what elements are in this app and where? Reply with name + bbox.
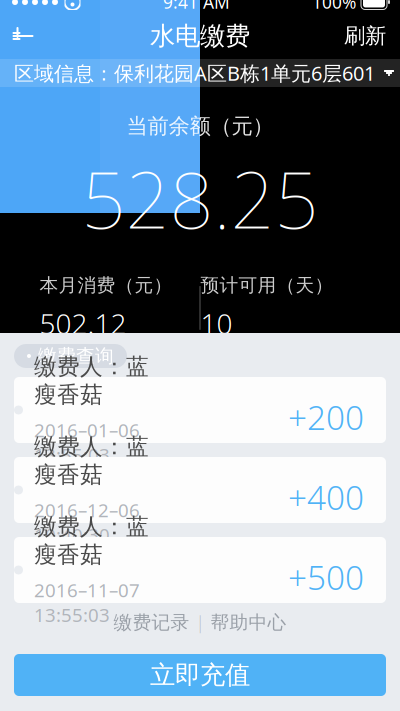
staticText: 100% — [312, 0, 356, 13]
staticText: 2016–11–07 13:55:03 — [34, 578, 145, 627]
staticText: +500 — [288, 555, 364, 599]
staticText: 刷新 — [344, 23, 386, 49]
button[interactable]: 区域信息：保利花园A区B栋1单元6层601 — [0, 59, 400, 87]
staticText: 9:41 AM — [163, 0, 230, 13]
staticText: 缴费人：蓝瘦香菇 — [34, 353, 149, 409]
button[interactable]: 刷新 — [330, 14, 400, 58]
button[interactable]: 返回 — [0, 14, 46, 58]
button[interactable]: 帮助中心 — [206, 607, 290, 638]
staticText: 528.25 — [81, 147, 318, 250]
staticText: 502.12 — [39, 305, 126, 342]
staticText: 2016–12–06 10:40:30 — [34, 498, 145, 547]
staticText: 帮助中心 — [210, 611, 286, 634]
staticText: 区域信息：保利花园A区B栋1单元6层601 — [14, 60, 375, 86]
staticText: 缴费人：蓝瘦香菇 — [34, 433, 149, 489]
button[interactable]: 缴费记录 — [109, 607, 193, 638]
staticText: +400 — [288, 475, 364, 519]
staticText: +200 — [288, 395, 364, 439]
staticText: 立即充值 — [150, 659, 250, 690]
staticText: 当前余额（元） — [126, 113, 273, 139]
button[interactable]: 缴费人：蓝瘦香菇 — [14, 537, 386, 603]
staticText: 缴费人：蓝瘦香菇 — [34, 513, 149, 569]
staticText: 缴费记录 — [113, 611, 189, 634]
button[interactable]: 缴费人：蓝瘦香菇 — [14, 457, 386, 523]
staticText: 预计可用（天） — [200, 274, 333, 297]
staticText: 本月消费（元） — [39, 274, 172, 297]
staticText: | — [195, 611, 204, 634]
staticText: 缴费查询 — [38, 344, 114, 367]
button[interactable]: 立即充值 — [14, 654, 386, 696]
staticText: 水电缴费 — [150, 20, 250, 51]
staticText: 10 — [200, 305, 232, 342]
staticText: 2016–01–06 13:55:03 — [34, 418, 145, 467]
button[interactable]: 缴费人：蓝瘦香菇 — [14, 377, 386, 443]
